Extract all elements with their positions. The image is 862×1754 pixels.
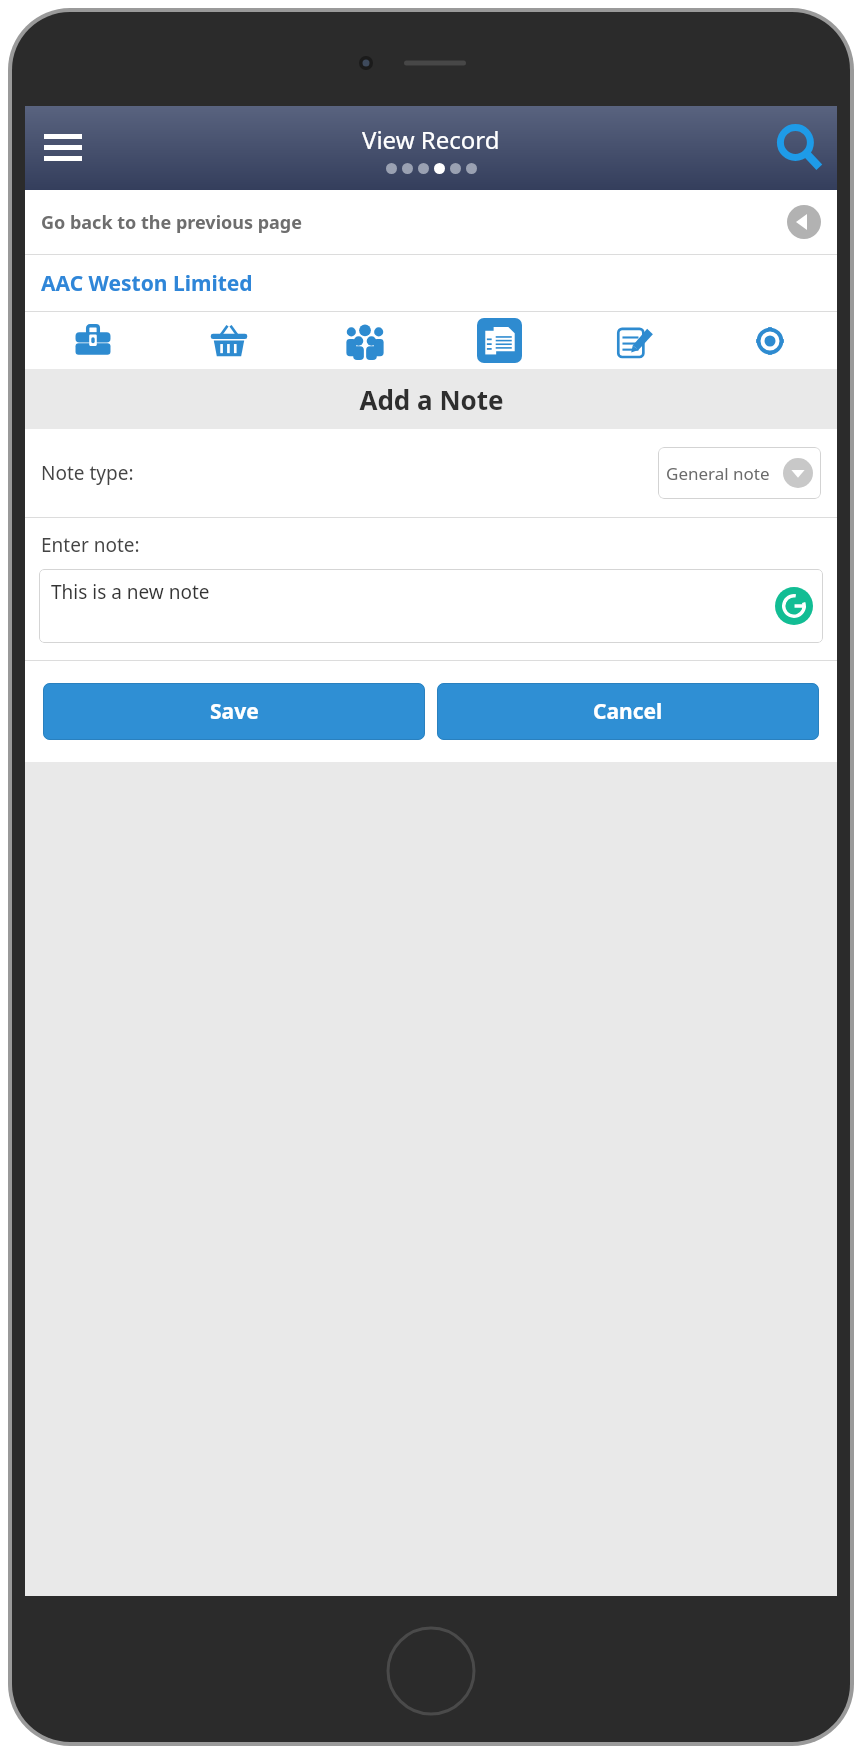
button[interactable]: Basket bbox=[161, 312, 297, 369]
staticText: Add a Note bbox=[359, 382, 504, 417]
staticText: This is a new note bbox=[51, 579, 210, 605]
staticText: General note bbox=[666, 462, 770, 485]
button[interactable]: Save bbox=[43, 683, 425, 740]
button[interactable]: AAC Weston Limited bbox=[25, 255, 837, 311]
button[interactable]: Documents bbox=[432, 312, 567, 369]
button[interactable]: Contacts bbox=[297, 312, 432, 369]
staticText: Note type: bbox=[41, 460, 134, 486]
staticText: View Record bbox=[362, 123, 500, 156]
button[interactable]: Notes bbox=[567, 312, 702, 369]
button[interactable]: Go back to the previous page bbox=[25, 190, 837, 254]
staticText: Go back to the previous page bbox=[41, 210, 302, 235]
button[interactable]: Menu bbox=[35, 120, 91, 176]
button[interactable]: Location bbox=[702, 312, 837, 369]
staticText: Save bbox=[210, 697, 259, 726]
staticText: Cancel bbox=[593, 697, 663, 726]
button[interactable]: Grammar check bbox=[775, 587, 813, 625]
staticText: Enter note: bbox=[41, 532, 140, 558]
button[interactable]: General note bbox=[658, 447, 821, 499]
button[interactable]: Search bbox=[769, 117, 831, 179]
button[interactable]: Cancel bbox=[437, 683, 819, 740]
button[interactable]: This is a new note bbox=[39, 569, 823, 643]
staticText: AAC Weston Limited bbox=[41, 269, 253, 298]
button[interactable]: Jobs bbox=[25, 312, 161, 369]
